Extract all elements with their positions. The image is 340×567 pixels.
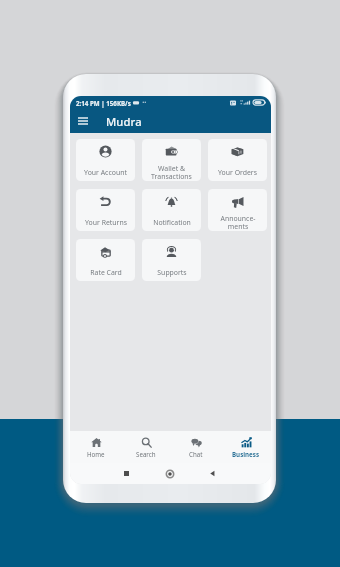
staticText: Notification bbox=[153, 218, 191, 227]
staticText: 2:14 PM | 156KB/s bbox=[76, 99, 131, 107]
button[interactable]: Chat bbox=[171, 431, 221, 463]
button[interactable]: Your Returns bbox=[76, 189, 135, 231]
button[interactable]: Notification bbox=[142, 189, 201, 231]
button[interactable]: Your Orders bbox=[208, 139, 267, 181]
staticText: Supports bbox=[157, 268, 187, 277]
staticText: Search bbox=[136, 450, 156, 458]
button[interactable]: Home bbox=[70, 431, 121, 463]
staticText: Announce- ments bbox=[220, 214, 256, 231]
staticText: Wallet & Transactions bbox=[151, 164, 192, 181]
button[interactable]: Recent apps bbox=[120, 467, 133, 480]
button[interactable]: Open navigation menu bbox=[74, 112, 92, 130]
button[interactable]: Your Account bbox=[76, 139, 135, 181]
staticText: Your Orders bbox=[218, 168, 257, 177]
button[interactable]: Business bbox=[221, 431, 271, 463]
staticText: Business bbox=[232, 450, 260, 458]
button[interactable]: Home bbox=[163, 467, 176, 480]
button[interactable]: Search bbox=[121, 431, 171, 463]
staticText: Your Returns bbox=[85, 218, 127, 227]
staticText: Home bbox=[87, 450, 105, 458]
button[interactable]: Supports bbox=[142, 239, 201, 281]
staticText: Rate Card bbox=[90, 268, 122, 277]
button[interactable]: Rate Card bbox=[76, 239, 135, 281]
button[interactable]: Announce- ments bbox=[208, 189, 267, 231]
staticText: Your Account bbox=[84, 168, 127, 177]
button[interactable]: Wallet & Transactions bbox=[142, 139, 201, 181]
staticText: Mudra bbox=[106, 114, 142, 129]
button[interactable]: Back bbox=[206, 467, 219, 480]
staticText: Chat bbox=[189, 450, 203, 458]
